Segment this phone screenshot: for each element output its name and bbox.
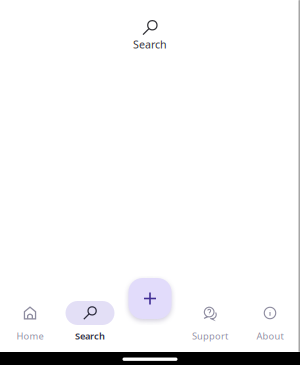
button[interactable]: About [240,301,300,341]
staticText: Search [75,330,105,342]
button[interactable]: Search [60,301,120,341]
staticText: Home [16,330,43,342]
staticText: About [256,330,283,342]
staticText: Search [133,37,167,51]
button[interactable]: Home [0,301,60,341]
button[interactable]: Support [180,301,240,341]
staticText: Support [192,330,228,342]
button[interactable]: Add [128,278,171,319]
